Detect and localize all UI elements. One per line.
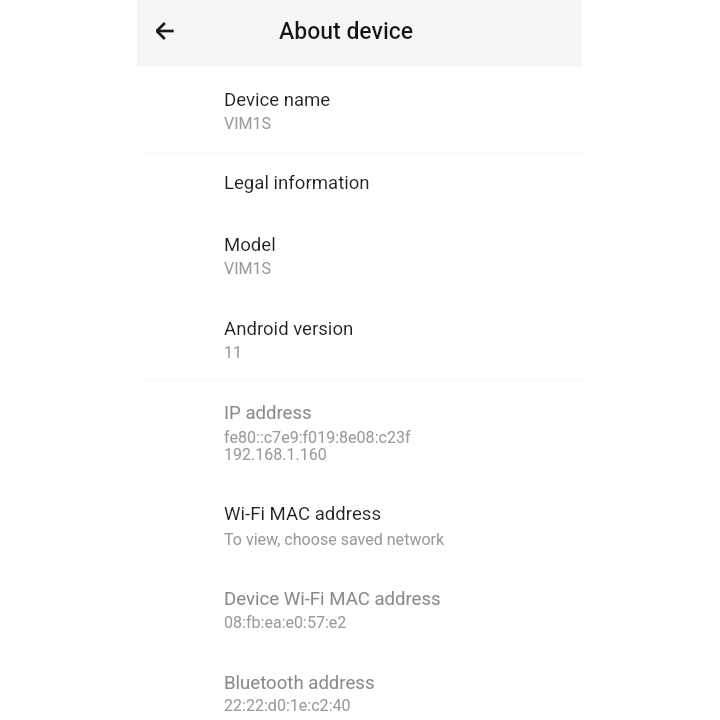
- staticText: Legal information: [224, 172, 370, 194]
- staticText: 08:fb:ea:e0:57:e2: [224, 613, 347, 632]
- button[interactable]: Wi-Fi MAC address: [137, 481, 582, 567]
- button[interactable]: Android version: [137, 297, 582, 378]
- staticText: VIM1S: [224, 114, 272, 133]
- staticText: 11: [224, 343, 243, 362]
- button[interactable]: Model: [137, 213, 582, 297]
- button[interactable]: Device Wi-Fi MAC address: [137, 567, 582, 651]
- staticText: Bluetooth address: [224, 672, 375, 694]
- staticText: Wi-Fi MAC address: [224, 503, 381, 525]
- button[interactable]: Legal information: [137, 152, 582, 213]
- button[interactable]: IP address: [137, 381, 582, 481]
- staticText: 22:22:d0:1e:c2:40: [224, 696, 351, 715]
- staticText: Device Wi-Fi MAC address: [224, 588, 441, 610]
- staticText: Device name: [224, 89, 331, 111]
- staticText: About device: [279, 18, 414, 45]
- button[interactable]: Bluetooth address: [137, 651, 582, 720]
- staticText: To view, choose saved network: [224, 530, 445, 549]
- button[interactable]: Device name: [137, 67, 582, 151]
- button[interactable]: Navigate up: [141, 12, 185, 56]
- staticText: 192.168.1.160: [224, 445, 327, 464]
- staticText: fe80::c7e9:f019:8e08:c23f: [224, 428, 411, 447]
- staticText: IP address: [224, 402, 312, 424]
- staticText: Model: [224, 234, 276, 256]
- staticText: VIM1S: [224, 259, 272, 278]
- staticText: Android version: [224, 318, 354, 340]
